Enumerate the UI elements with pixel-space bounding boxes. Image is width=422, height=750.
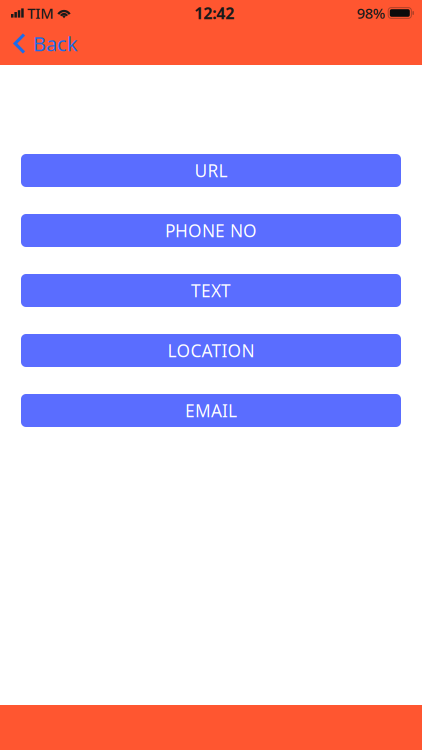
staticText: Back [33,30,78,57]
staticText: TEXT [191,279,231,302]
button[interactable]: URL [21,154,401,187]
button[interactable]: TEXT [21,274,401,307]
staticText: 98% [357,3,385,23]
staticText: TIM [27,3,53,23]
staticText: PHONE NO [165,219,257,242]
button[interactable]: Back [0,23,88,62]
staticText: LOCATION [167,339,254,362]
button[interactable]: LOCATION [21,334,401,367]
staticText: 12:42 [194,2,234,24]
staticText: URL [194,159,227,182]
staticText: EMAIL [185,399,237,422]
button[interactable]: PHONE NO [21,214,401,247]
button[interactable]: EMAIL [21,394,401,427]
